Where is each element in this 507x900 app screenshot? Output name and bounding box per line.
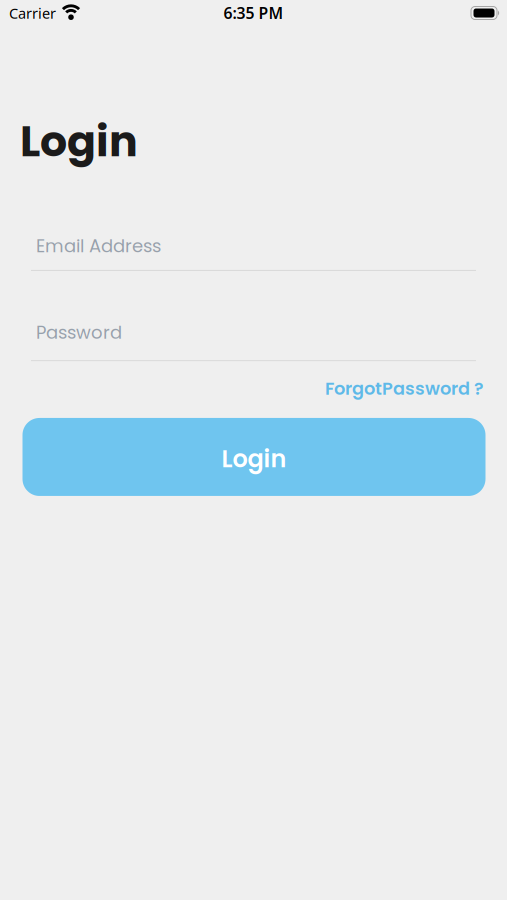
staticText: Login	[20, 111, 138, 171]
staticText: 6:35 PM	[223, 2, 283, 24]
staticText: Email Address	[36, 233, 161, 258]
button[interactable]: Login	[22, 418, 485, 496]
button[interactable]: ForgotPassword ?	[325, 376, 484, 401]
staticText: Password	[36, 320, 122, 345]
staticText: Login	[221, 442, 286, 476]
button[interactable]: Password	[0, 320, 507, 361]
staticText: ForgotPassword ?	[325, 376, 484, 401]
staticText: Carrier	[9, 3, 56, 23]
button[interactable]: Email Address	[0, 233, 507, 271]
